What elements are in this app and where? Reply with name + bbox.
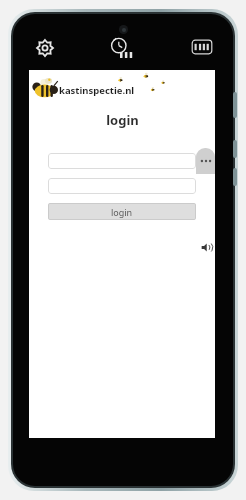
button[interactable] bbox=[48, 153, 196, 169]
staticText: kastinspectie.nl bbox=[59, 84, 135, 97]
button[interactable]: Settings bbox=[35, 38, 55, 58]
button[interactable]: kastinspectie.nl bbox=[32, 76, 182, 102]
button[interactable] bbox=[48, 178, 196, 194]
button[interactable]: Clock 9:16 bbox=[191, 39, 213, 55]
button[interactable]: Alarm off bbox=[108, 38, 138, 58]
staticText: login bbox=[111, 206, 133, 218]
button[interactable]: More options bbox=[196, 148, 215, 174]
staticText: login bbox=[106, 111, 139, 129]
button[interactable]: login bbox=[48, 203, 196, 220]
button[interactable]: Sound bbox=[199, 240, 213, 254]
